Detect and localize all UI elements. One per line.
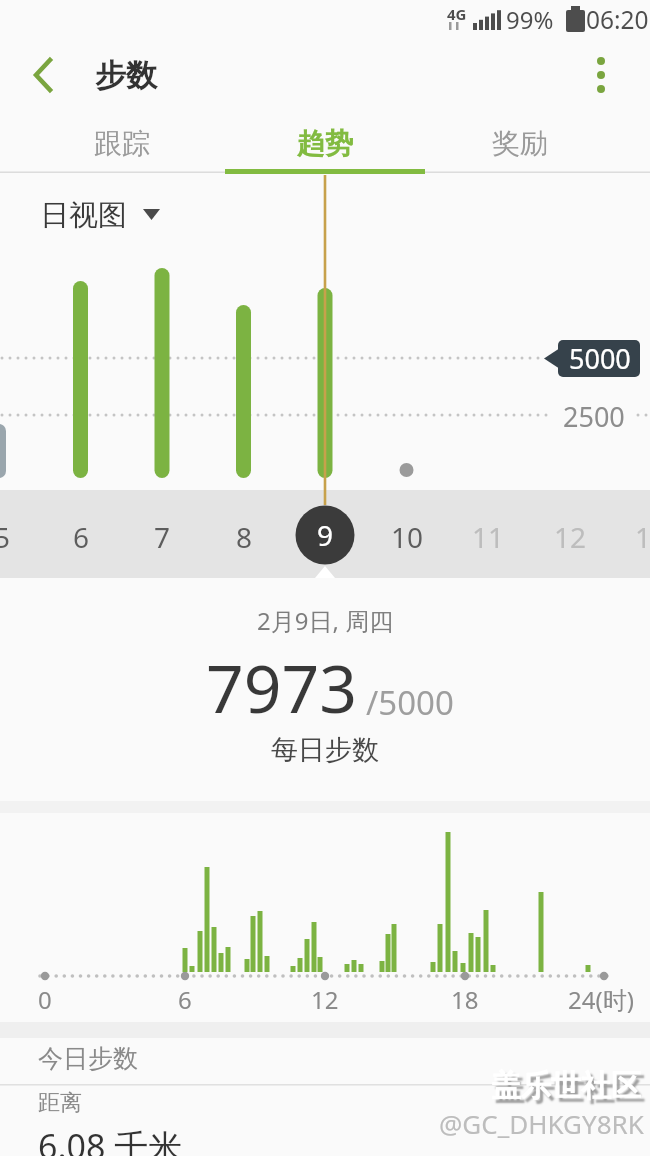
staticText: 每日步数 <box>271 733 379 767</box>
button[interactable]: 奖励 <box>412 111 628 175</box>
staticText: 2月9日, 周四 <box>257 604 394 637</box>
staticText: 7 <box>154 518 171 556</box>
button[interactable]: 跟踪 <box>14 111 230 175</box>
staticText: 奖励 <box>492 126 548 161</box>
button[interactable]: 今日步数 <box>38 1028 238 1088</box>
staticText: 06:20 <box>586 3 649 36</box>
staticText: 10 <box>391 518 424 556</box>
staticText: 7973 <box>206 642 358 732</box>
staticText: 2500 <box>563 398 625 435</box>
button[interactable]: 6 <box>51 507 111 567</box>
button[interactable]: 趋势 <box>225 111 425 175</box>
button[interactable]: 10 <box>377 507 437 567</box>
staticText: 8 <box>236 518 253 556</box>
button[interactable]: 日视图 <box>40 185 160 245</box>
staticText: 11 <box>472 518 505 556</box>
staticText: 6.08 千米 <box>38 1123 183 1156</box>
staticText: 跟踪 <box>94 126 150 161</box>
staticText: 12 <box>554 518 587 556</box>
staticText: 0 <box>38 983 52 1016</box>
staticText: 18 <box>451 983 479 1016</box>
staticText: 9 <box>317 516 334 554</box>
button[interactable] <box>580 50 625 100</box>
staticText: 6 <box>178 983 192 1016</box>
staticText: 5 <box>0 518 11 556</box>
staticText: /5000 <box>366 680 454 725</box>
staticText: 日视图 <box>40 197 127 234</box>
staticText: 6 <box>73 518 90 556</box>
button[interactable]: 8 <box>214 507 274 567</box>
staticText: 趋势 <box>297 126 353 161</box>
staticText: 12 <box>311 983 339 1016</box>
staticText: 步数 <box>95 56 157 95</box>
staticText: 距离 <box>38 1089 82 1117</box>
button[interactable]: 9 <box>295 505 355 565</box>
button[interactable]: 7 <box>132 507 192 567</box>
staticText: 24(时) <box>568 983 634 1016</box>
staticText: @GC_DHKGY8RK <box>439 1106 644 1141</box>
staticText: 4G <box>447 4 467 24</box>
staticText: 99% <box>506 3 554 36</box>
staticText: 盖乐世社区 <box>491 1067 641 1105</box>
button[interactable] <box>20 55 65 95</box>
staticText: 今日步数 <box>38 1043 138 1074</box>
staticText: 13 <box>635 518 650 556</box>
staticText: 5000 <box>569 340 631 377</box>
